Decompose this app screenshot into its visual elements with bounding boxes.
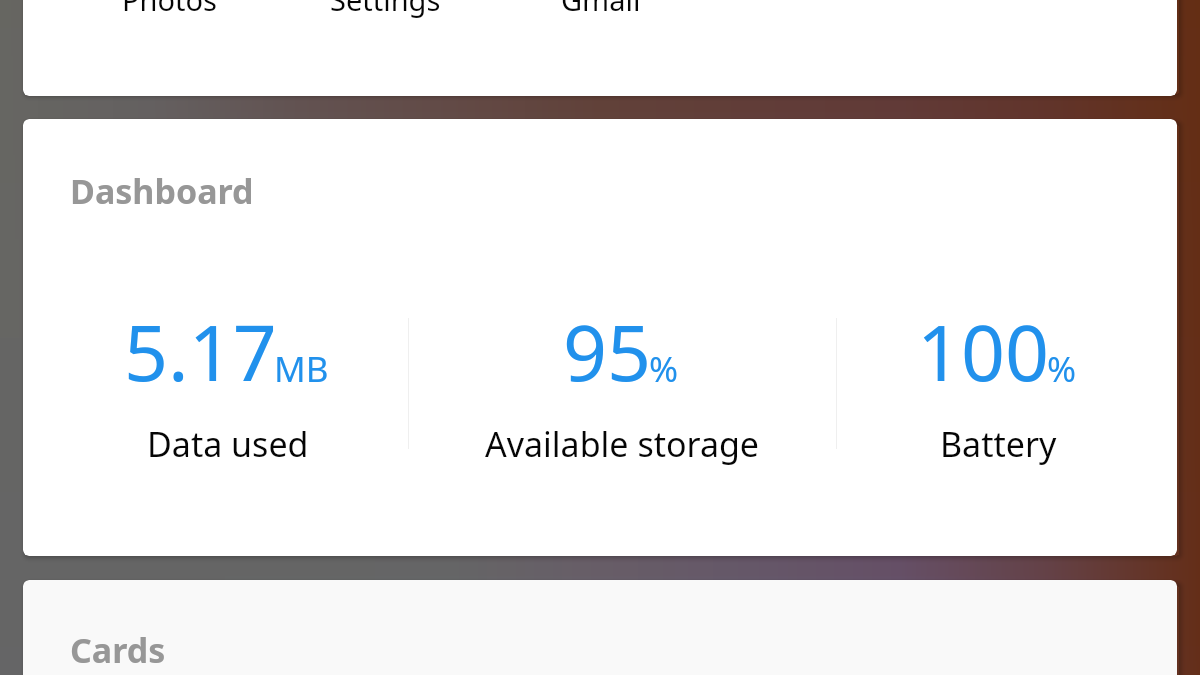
staticText: Gmail xyxy=(561,0,641,19)
button[interactable]: 100 xyxy=(828,299,1168,467)
button[interactable]: Settings xyxy=(277,0,493,40)
staticText: Settings xyxy=(330,0,441,19)
staticText: Photos xyxy=(122,0,217,19)
staticText: Data used xyxy=(147,421,309,467)
staticText: 100 xyxy=(917,299,1050,404)
staticText: Dashboard xyxy=(70,168,254,214)
button[interactable]: 95 xyxy=(409,299,836,467)
staticText: % xyxy=(1047,345,1077,393)
staticText: Cards xyxy=(70,627,166,673)
staticText: 5.17 xyxy=(124,299,277,404)
staticText: Battery xyxy=(940,421,1057,467)
staticText: Available storage xyxy=(485,421,760,467)
button[interactable]: Gmail xyxy=(493,0,709,40)
button[interactable]: 5.17 xyxy=(35,299,420,467)
staticText: MB xyxy=(274,345,329,393)
staticText: 95 xyxy=(563,299,652,404)
button[interactable]: Photos xyxy=(61,0,277,40)
staticText: % xyxy=(649,345,679,393)
